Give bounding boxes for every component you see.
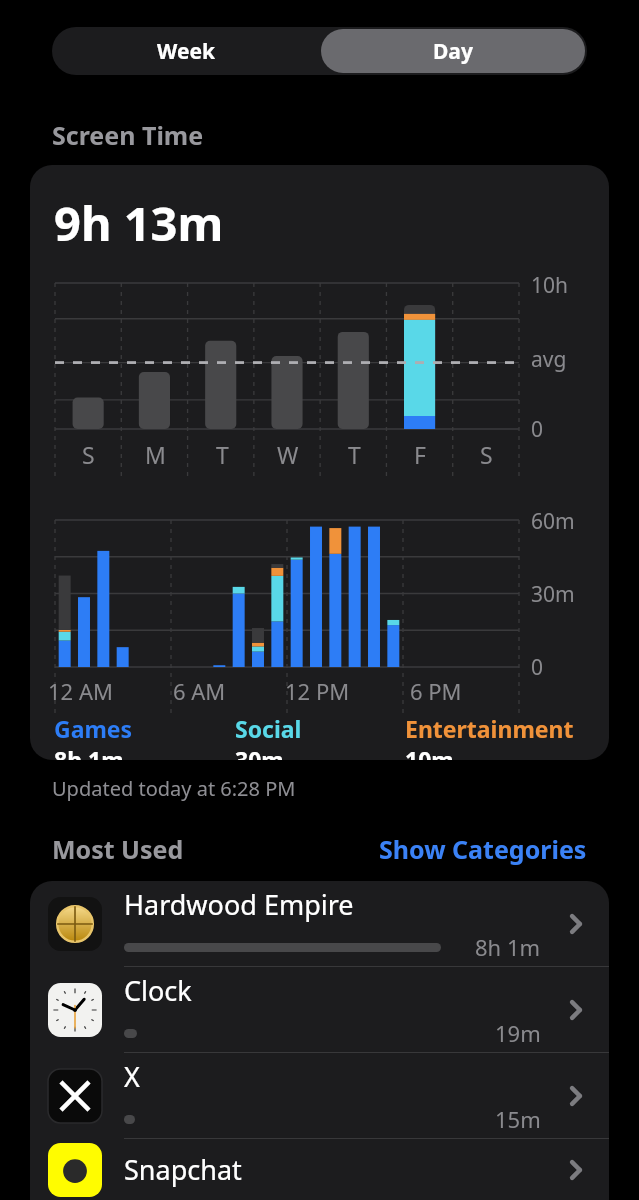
staticText: 6 AM — [173, 676, 226, 706]
staticText: Screen Time — [52, 118, 204, 152]
staticText: 12 AM — [48, 676, 113, 706]
staticText: 8h 1m — [54, 744, 124, 760]
staticText: 9h 13m — [54, 191, 224, 255]
staticText: Games — [54, 713, 133, 744]
staticText: 60m — [531, 507, 575, 536]
staticText: Updated today at 6:28 PM — [52, 775, 296, 802]
staticText: Clock — [124, 972, 192, 1009]
staticText: F — [414, 439, 426, 470]
staticText: Day — [433, 37, 473, 66]
staticText: T — [216, 439, 229, 470]
other: Open Clock details — [561, 995, 591, 1025]
staticText: Entertainment — [405, 713, 574, 744]
staticText: 30m — [531, 580, 575, 609]
staticText: S — [82, 439, 95, 470]
staticText: Snapchat — [124, 1151, 242, 1188]
other: Open X details — [561, 1081, 591, 1111]
other: Open Hardwood Empire details — [561, 909, 591, 939]
button[interactable]: X — [30, 1053, 609, 1138]
staticText: T — [348, 439, 361, 470]
button[interactable]: Week — [52, 27, 319, 75]
button[interactable]: 9h 13m — [30, 165, 609, 760]
staticText: X — [124, 1058, 140, 1095]
staticText: 15m — [495, 1104, 541, 1134]
staticText: 19m — [495, 1018, 541, 1048]
staticText: S — [480, 439, 493, 470]
staticText: 0 — [531, 653, 544, 682]
button[interactable]: Hardwood Empire — [30, 881, 609, 966]
staticText: M — [145, 439, 166, 470]
staticText: 8h 1m — [475, 932, 541, 962]
staticText: 10h — [531, 271, 569, 300]
button[interactable]: Day — [321, 29, 585, 73]
staticText: 6 PM — [410, 676, 462, 706]
button[interactable]: Snapchat — [30, 1139, 609, 1200]
staticText: Most Used — [52, 832, 184, 866]
staticText: Show Categories — [379, 832, 587, 866]
staticText: Social — [235, 713, 302, 744]
staticText: 12 PM — [285, 676, 350, 706]
staticText: W — [277, 439, 299, 470]
staticText: 10m — [405, 744, 454, 760]
staticText: 0 — [531, 415, 544, 444]
other: Open Snapchat details — [561, 1155, 591, 1185]
staticText: 30m — [235, 744, 284, 760]
staticText: Hardwood Empire — [124, 886, 354, 923]
staticText: avg — [531, 345, 567, 374]
button[interactable]: Show Categories — [379, 832, 587, 866]
staticText: Week — [157, 37, 215, 66]
button[interactable]: Clock — [30, 967, 609, 1052]
